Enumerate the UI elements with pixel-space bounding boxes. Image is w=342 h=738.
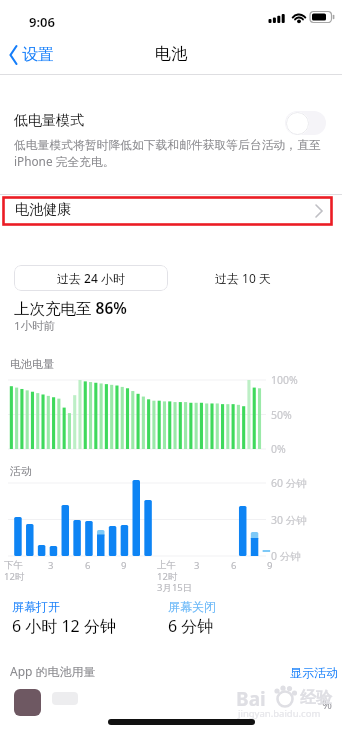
button[interactable]: 显示活动 — [270, 663, 338, 681]
staticText: 屏幕关闭 — [168, 599, 216, 614]
staticText: 屏幕打开 — [12, 599, 60, 614]
staticText: 3 — [194, 559, 200, 572]
staticText: 9:06 — [29, 13, 55, 31]
staticText: 电池健康 — [15, 201, 71, 219]
button[interactable]: 设置 — [6, 42, 54, 68]
staticText: iPhone 完全充电。 — [14, 153, 115, 169]
staticText: 6 小时 12 分钟 — [12, 615, 116, 637]
staticText: 3月15日 — [157, 581, 193, 594]
staticText: 30 分钟 — [271, 513, 307, 527]
staticText: jingyan.baidu.com — [238, 707, 321, 720]
staticText: % — [322, 696, 332, 712]
button[interactable]: 电池健康 — [0, 198, 342, 225]
button[interactable]: 过去 10 天 — [160, 265, 326, 291]
staticText: 显示活动 — [290, 665, 338, 680]
staticText: 6 分钟 — [168, 615, 214, 637]
staticText: 12时 — [4, 570, 25, 583]
staticText: 经验 — [300, 688, 332, 708]
staticText: App 的电池用量 — [10, 663, 96, 679]
staticText: 低电量模式将暂时降低如下载和邮件获取等后台活动，直至 — [14, 138, 321, 153]
staticText: 下午 — [4, 559, 23, 571]
staticText: Bai — [236, 686, 266, 712]
button[interactable]: 低电量模式 — [0, 103, 342, 141]
staticText: 1小时前 — [14, 318, 56, 334]
staticText: 0% — [271, 442, 286, 456]
staticText: 活动 — [10, 464, 32, 478]
staticText: 3 — [48, 559, 54, 572]
staticText: 电池 — [155, 44, 187, 64]
staticText: 9 — [121, 559, 127, 572]
staticText: 上午 — [157, 559, 176, 571]
staticText: 100% — [271, 373, 298, 387]
staticText: 设置 — [22, 45, 54, 65]
staticText: 电池电量 — [10, 357, 54, 371]
staticText: 0 分钟 — [271, 549, 301, 563]
button[interactable]: % — [0, 684, 342, 722]
staticText: 12时 — [157, 570, 178, 583]
staticText: 6 — [85, 559, 91, 572]
button[interactable]: 过去 24 小时 — [14, 265, 168, 291]
staticText: 上次充电至 86% — [14, 297, 127, 318]
staticText: 9 — [267, 559, 273, 572]
staticText: 过去 24 小时 — [57, 270, 125, 286]
staticText: 60 分钟 — [271, 476, 307, 490]
staticText: 6 — [231, 559, 237, 572]
staticText: 低电量模式 — [14, 112, 84, 130]
staticText: 过去 10 天 — [215, 270, 271, 286]
staticText: 50% — [271, 408, 292, 422]
